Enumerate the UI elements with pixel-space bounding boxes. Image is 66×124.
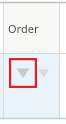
staticText: Order [8,21,39,36]
button[interactable]: Filter Order column [9,58,37,88]
button[interactable]: Sort Order column [37,60,59,86]
button[interactable]: Order [4,3,59,53]
